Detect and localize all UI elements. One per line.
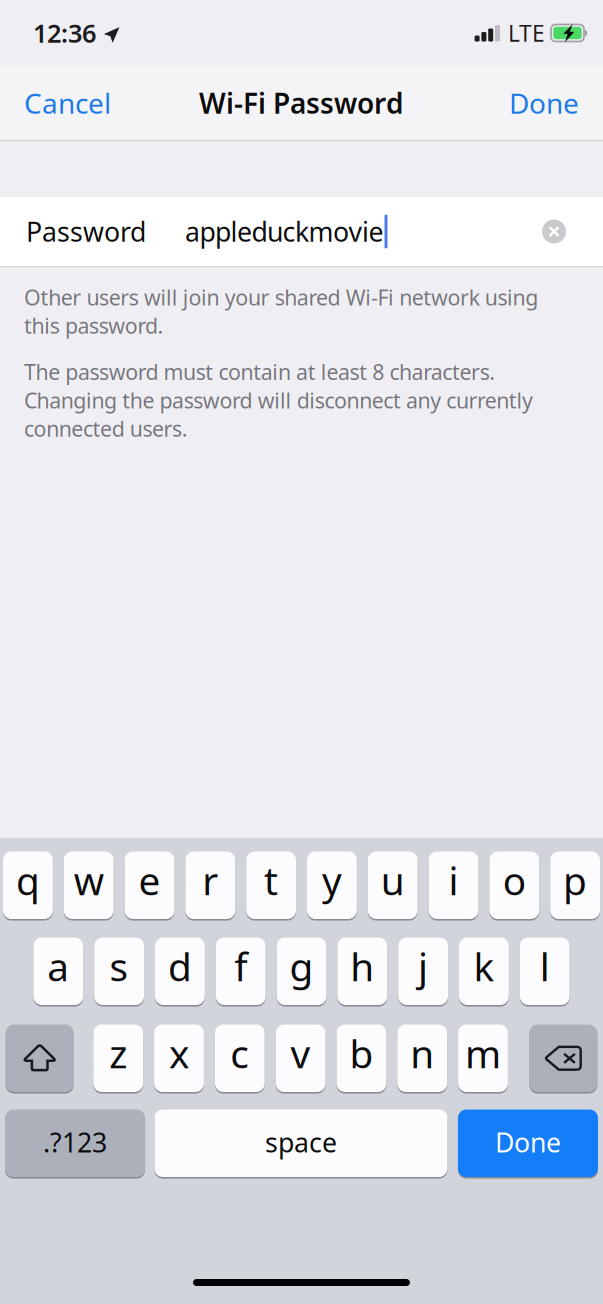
staticText: s — [110, 941, 129, 992]
button[interactable]: e — [125, 850, 174, 920]
staticText: r — [202, 855, 218, 906]
staticText: z — [109, 1028, 127, 1079]
staticText: c — [230, 1028, 249, 1079]
staticText: y — [322, 855, 342, 906]
button[interactable]: d — [155, 936, 205, 1006]
staticText: LTE — [508, 18, 545, 48]
button[interactable]: u — [368, 850, 418, 920]
staticText: f — [234, 941, 247, 992]
button[interactable]: i — [429, 850, 478, 920]
button[interactable]: space — [154, 1108, 447, 1178]
button[interactable]: Done — [503, 76, 585, 130]
staticText: w — [74, 855, 104, 906]
staticText: o — [503, 855, 526, 906]
button[interactable]: Clear text — [542, 219, 566, 243]
button[interactable]: p — [550, 850, 600, 920]
staticText: 12:36 — [33, 16, 96, 50]
button[interactable]: j — [398, 936, 448, 1006]
staticText: x — [169, 1028, 189, 1079]
button[interactable]: x — [154, 1023, 204, 1093]
button[interactable]: k — [459, 936, 509, 1006]
staticText: a — [47, 941, 69, 992]
staticText: u — [381, 855, 405, 906]
staticText: b — [349, 1028, 373, 1079]
staticText: appleduckmovie — [185, 214, 383, 249]
staticText: Password — [26, 214, 146, 249]
staticText: Cancel — [24, 84, 111, 122]
button[interactable]: z — [93, 1023, 143, 1093]
staticText: l — [540, 941, 550, 992]
staticText: space — [265, 1124, 337, 1160]
button[interactable]: m — [458, 1023, 508, 1093]
button[interactable]: o — [489, 850, 539, 920]
staticText: j — [418, 941, 428, 992]
staticText: .?123 — [43, 1124, 107, 1160]
button[interactable]: Shift — [6, 1023, 74, 1093]
staticText: d — [168, 941, 192, 992]
button[interactable]: g — [277, 936, 326, 1006]
button[interactable]: Done — [458, 1108, 598, 1178]
staticText: n — [410, 1028, 434, 1079]
button[interactable]: b — [336, 1023, 386, 1093]
staticText: Done — [495, 1124, 561, 1160]
button[interactable]: a — [33, 936, 83, 1006]
staticText: i — [448, 855, 458, 906]
button[interactable]: c — [215, 1023, 265, 1093]
staticText: Wi-Fi Password — [199, 84, 404, 122]
button[interactable]: v — [276, 1023, 325, 1093]
button[interactable]: h — [337, 936, 387, 1006]
button[interactable]: q — [3, 850, 53, 920]
button[interactable]: Cancel — [18, 76, 117, 130]
button[interactable]: y — [307, 850, 357, 920]
button[interactable]: s — [94, 936, 144, 1006]
button[interactable]: w — [64, 850, 114, 920]
button[interactable]: t — [246, 850, 296, 920]
staticText: g — [289, 941, 313, 992]
button[interactable]: .?123 — [5, 1108, 145, 1178]
button[interactable]: f — [216, 936, 266, 1006]
staticText: t — [264, 855, 278, 906]
button[interactable]: l — [520, 936, 570, 1006]
staticText: e — [138, 855, 160, 906]
button[interactable]: r — [185, 850, 235, 920]
staticText: m — [465, 1028, 501, 1079]
button[interactable]: n — [397, 1023, 447, 1093]
staticText: v — [291, 1028, 311, 1079]
staticText: k — [473, 941, 494, 992]
staticText: q — [16, 855, 40, 906]
staticText: The password must contain at least 8 cha… — [24, 358, 533, 443]
staticText: Done — [509, 84, 579, 122]
button[interactable]: Delete — [529, 1023, 597, 1093]
staticText: h — [350, 941, 374, 992]
staticText: Other users will join your shared Wi-Fi … — [24, 283, 538, 340]
staticText: p — [563, 855, 587, 906]
